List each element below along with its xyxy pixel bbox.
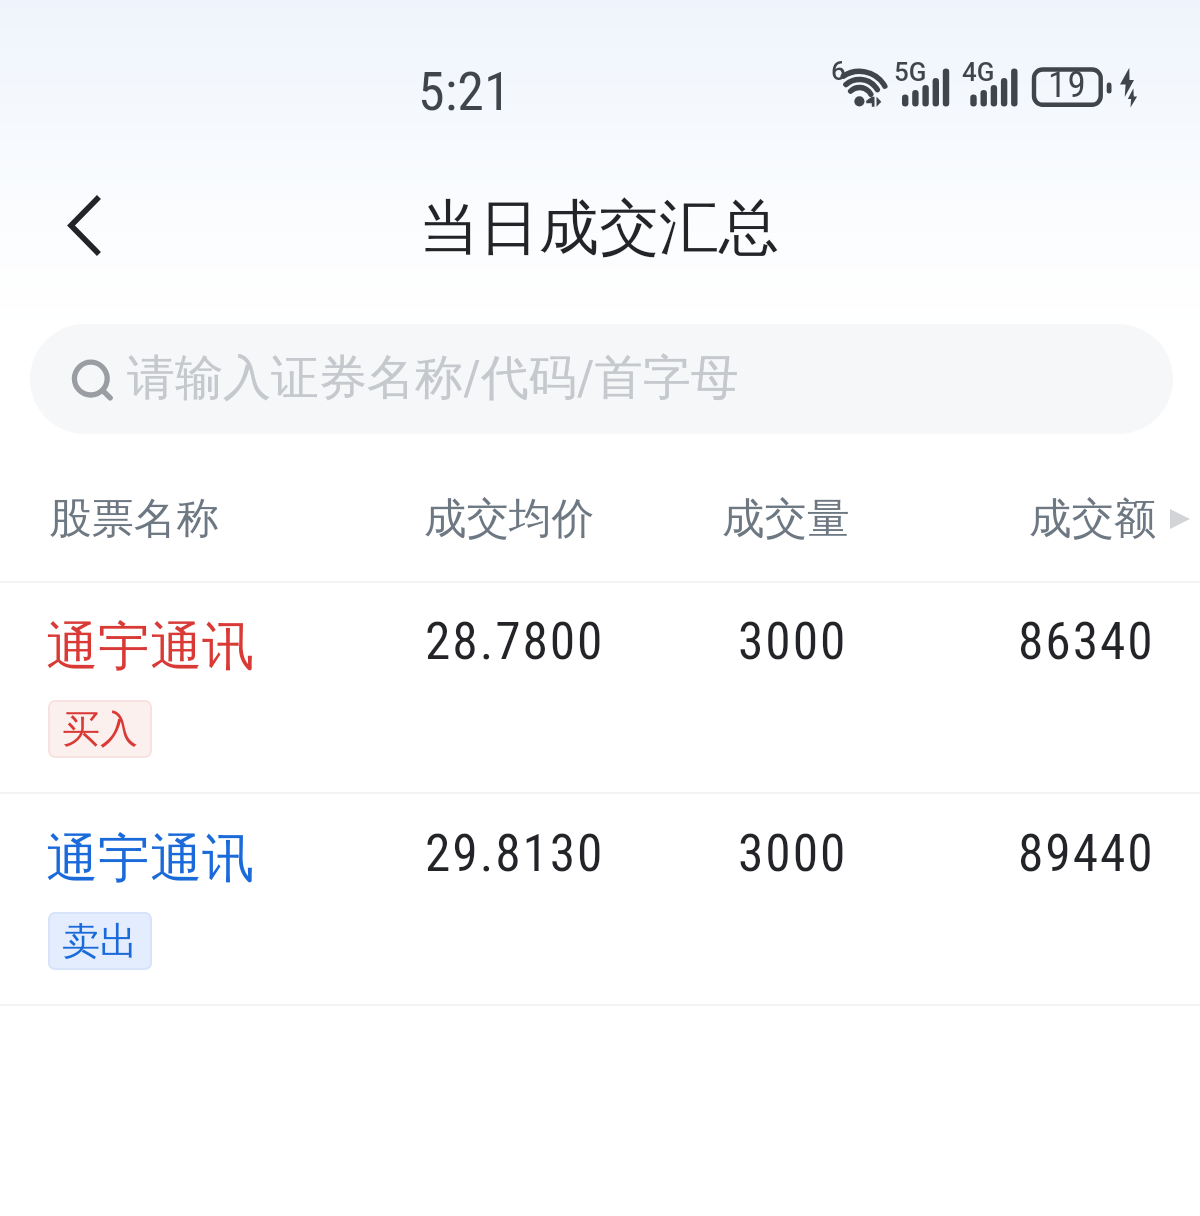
staticText: 成交额 (1029, 492, 1157, 546)
staticText: 当日成交汇总 (419, 190, 779, 266)
staticText: 买入 (62, 705, 138, 753)
staticText: 19 (1048, 63, 1087, 106)
staticText: 通宇通讯 (46, 826, 254, 892)
staticText: 卖出 (62, 917, 138, 965)
staticText: 成交均价 (424, 492, 594, 546)
staticText: 通宇通讯 (46, 614, 254, 680)
staticText: 86340 (1018, 611, 1155, 671)
button[interactable]: Back (44, 174, 124, 254)
staticText: 3000 (738, 823, 848, 883)
staticText: 3000 (738, 611, 848, 671)
staticText: 28.7800 (425, 611, 605, 671)
staticText: 6 (831, 56, 846, 86)
staticText: 5:21 (418, 60, 511, 123)
button[interactable]: 通宇通讯 (0, 794, 1200, 1005)
staticText: 5G (894, 57, 927, 87)
staticText: 4G (962, 57, 995, 87)
staticText: 29.8130 (425, 823, 605, 883)
button[interactable]: 成交额 (1029, 492, 1190, 546)
staticText: 股票名称 (49, 492, 219, 546)
staticText: 成交量 (722, 492, 850, 546)
staticText: 请输入证券名称/代码/首字母 (127, 348, 739, 408)
button[interactable]: 请输入证券名称/代码/首字母 (30, 324, 1173, 434)
button[interactable]: 通宇通讯 (0, 582, 1200, 793)
staticText: 89440 (1018, 823, 1155, 883)
